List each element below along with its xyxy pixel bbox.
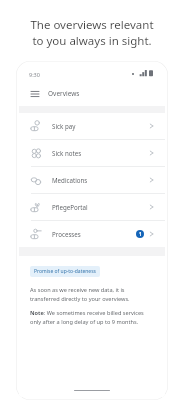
staticText: Processes (52, 230, 81, 238)
staticText: Promise of up-to-dateness (34, 268, 96, 275)
button[interactable]: Menu (29, 88, 41, 100)
staticText: Overviews (48, 89, 80, 98)
staticText: Note: We sometimes receive billed servic… (30, 309, 144, 325)
staticText: 1 (139, 231, 142, 237)
button[interactable]: Sick pay (19, 113, 165, 139)
button[interactable]: Medications (19, 167, 165, 193)
staticText: PflegePortal (52, 203, 88, 211)
staticText: Sick pay (52, 122, 76, 130)
button[interactable]: PflegePortal (19, 194, 165, 220)
button[interactable]: Processes (19, 221, 165, 247)
staticText: 9:30 (29, 71, 40, 78)
staticText: Sick notes (52, 149, 82, 157)
staticText: Medications (52, 176, 88, 184)
button[interactable]: Sick notes (19, 140, 165, 166)
staticText: The overviews relevant to you always in … (30, 17, 154, 49)
staticText: As soon as we receive new data, it is tr… (30, 286, 130, 302)
